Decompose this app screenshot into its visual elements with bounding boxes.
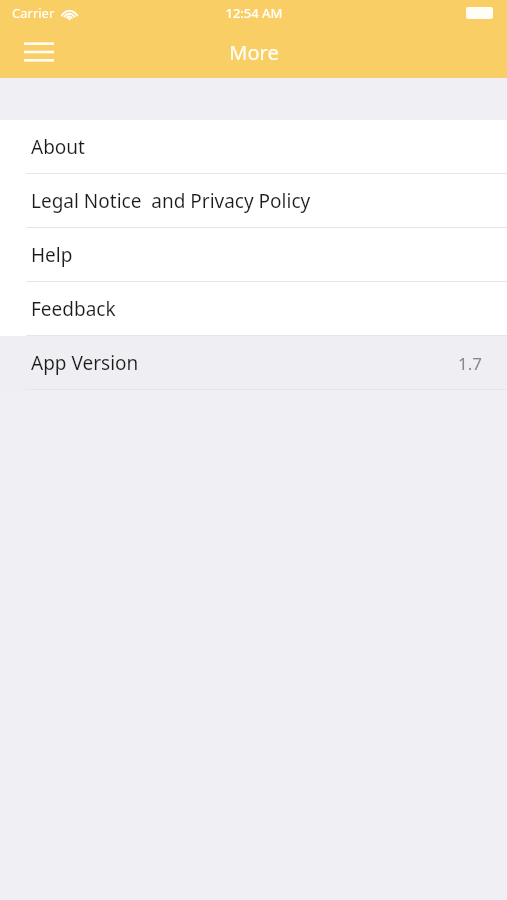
staticText: Feedback: [31, 296, 116, 322]
staticText: 1.7: [458, 352, 483, 375]
staticText: 12:54 AM: [225, 4, 283, 22]
button[interactable]: Help: [0, 228, 507, 282]
staticText: Help: [31, 242, 73, 268]
button[interactable]: Open navigation menu: [16, 29, 62, 75]
button[interactable]: Feedback: [0, 282, 507, 336]
staticText: App Version: [31, 350, 139, 376]
staticText: Carrier: [12, 4, 55, 22]
button[interactable]: App Version: [0, 336, 507, 390]
staticText: About: [31, 134, 85, 160]
button[interactable]: About: [0, 120, 507, 174]
staticText: Legal Notice and Privacy Policy: [31, 188, 311, 214]
staticText: More: [229, 39, 279, 66]
button[interactable]: Legal Notice and Privacy Policy: [0, 174, 507, 228]
